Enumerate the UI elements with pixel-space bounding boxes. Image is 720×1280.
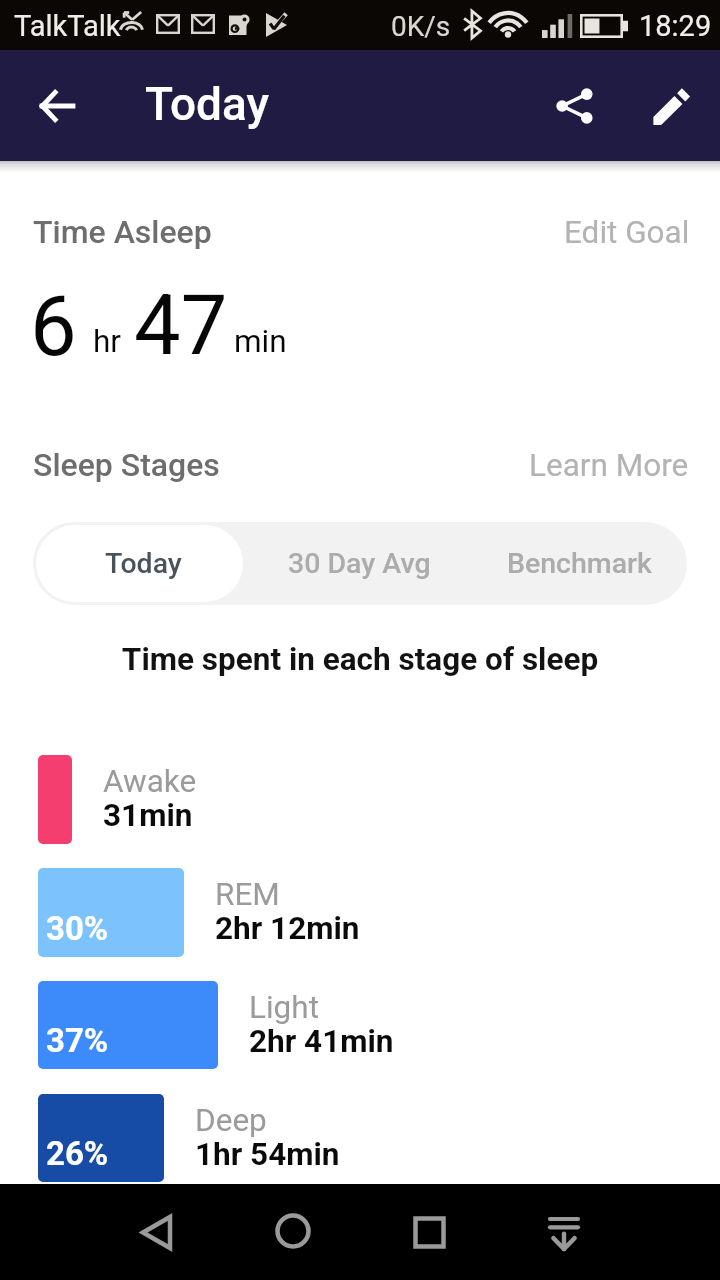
staticText: 31min	[103, 797, 193, 834]
staticText: 37%	[46, 1021, 109, 1060]
staticText: Learn More	[529, 447, 689, 484]
button[interactable]: Learn More	[509, 434, 694, 496]
button[interactable]: Edit	[642, 76, 702, 136]
staticText: Light	[249, 989, 319, 1026]
staticText: 2hr 41min	[249, 1023, 394, 1060]
staticText: Sleep Stages	[33, 446, 220, 484]
staticText: 18:29	[639, 9, 712, 43]
staticText: Deep	[195, 1102, 267, 1139]
staticText: 26%	[46, 1134, 109, 1173]
staticText: 6	[30, 278, 77, 375]
staticText: Awake	[103, 763, 197, 800]
button[interactable]: Hide keyboard	[524, 1193, 604, 1273]
button[interactable]: Home	[253, 1191, 333, 1271]
button[interactable]: 30 Day Avg	[246, 522, 467, 605]
staticText: Time Asleep	[33, 213, 212, 251]
staticText: Time spent in each stage of sleep	[0, 641, 720, 678]
staticText: TalkTalk	[14, 9, 121, 43]
staticText: 0K/s	[391, 10, 451, 43]
button[interactable]: Share	[544, 76, 604, 136]
staticText: Edit Goal	[564, 214, 690, 251]
staticText: REM	[215, 876, 280, 913]
staticText: 47	[134, 277, 228, 374]
staticText: 30 Day Avg	[288, 547, 431, 580]
staticText: 30%	[46, 909, 109, 948]
button[interactable]: Back	[26, 76, 86, 136]
staticText: Today	[105, 547, 182, 580]
button[interactable]: Recents	[389, 1192, 469, 1272]
staticText: 1hr 54min	[195, 1136, 340, 1173]
button[interactable]: Today	[36, 525, 243, 602]
button[interactable]: Back	[116, 1192, 196, 1272]
staticText: Benchmark	[507, 547, 652, 580]
staticText: hr	[93, 323, 122, 360]
staticText: min	[234, 323, 287, 360]
button[interactable]: Edit Goal	[544, 201, 694, 263]
button[interactable]: Benchmark	[467, 522, 687, 605]
staticText: 2hr 12min	[215, 910, 360, 947]
staticText: Today	[145, 77, 269, 131]
